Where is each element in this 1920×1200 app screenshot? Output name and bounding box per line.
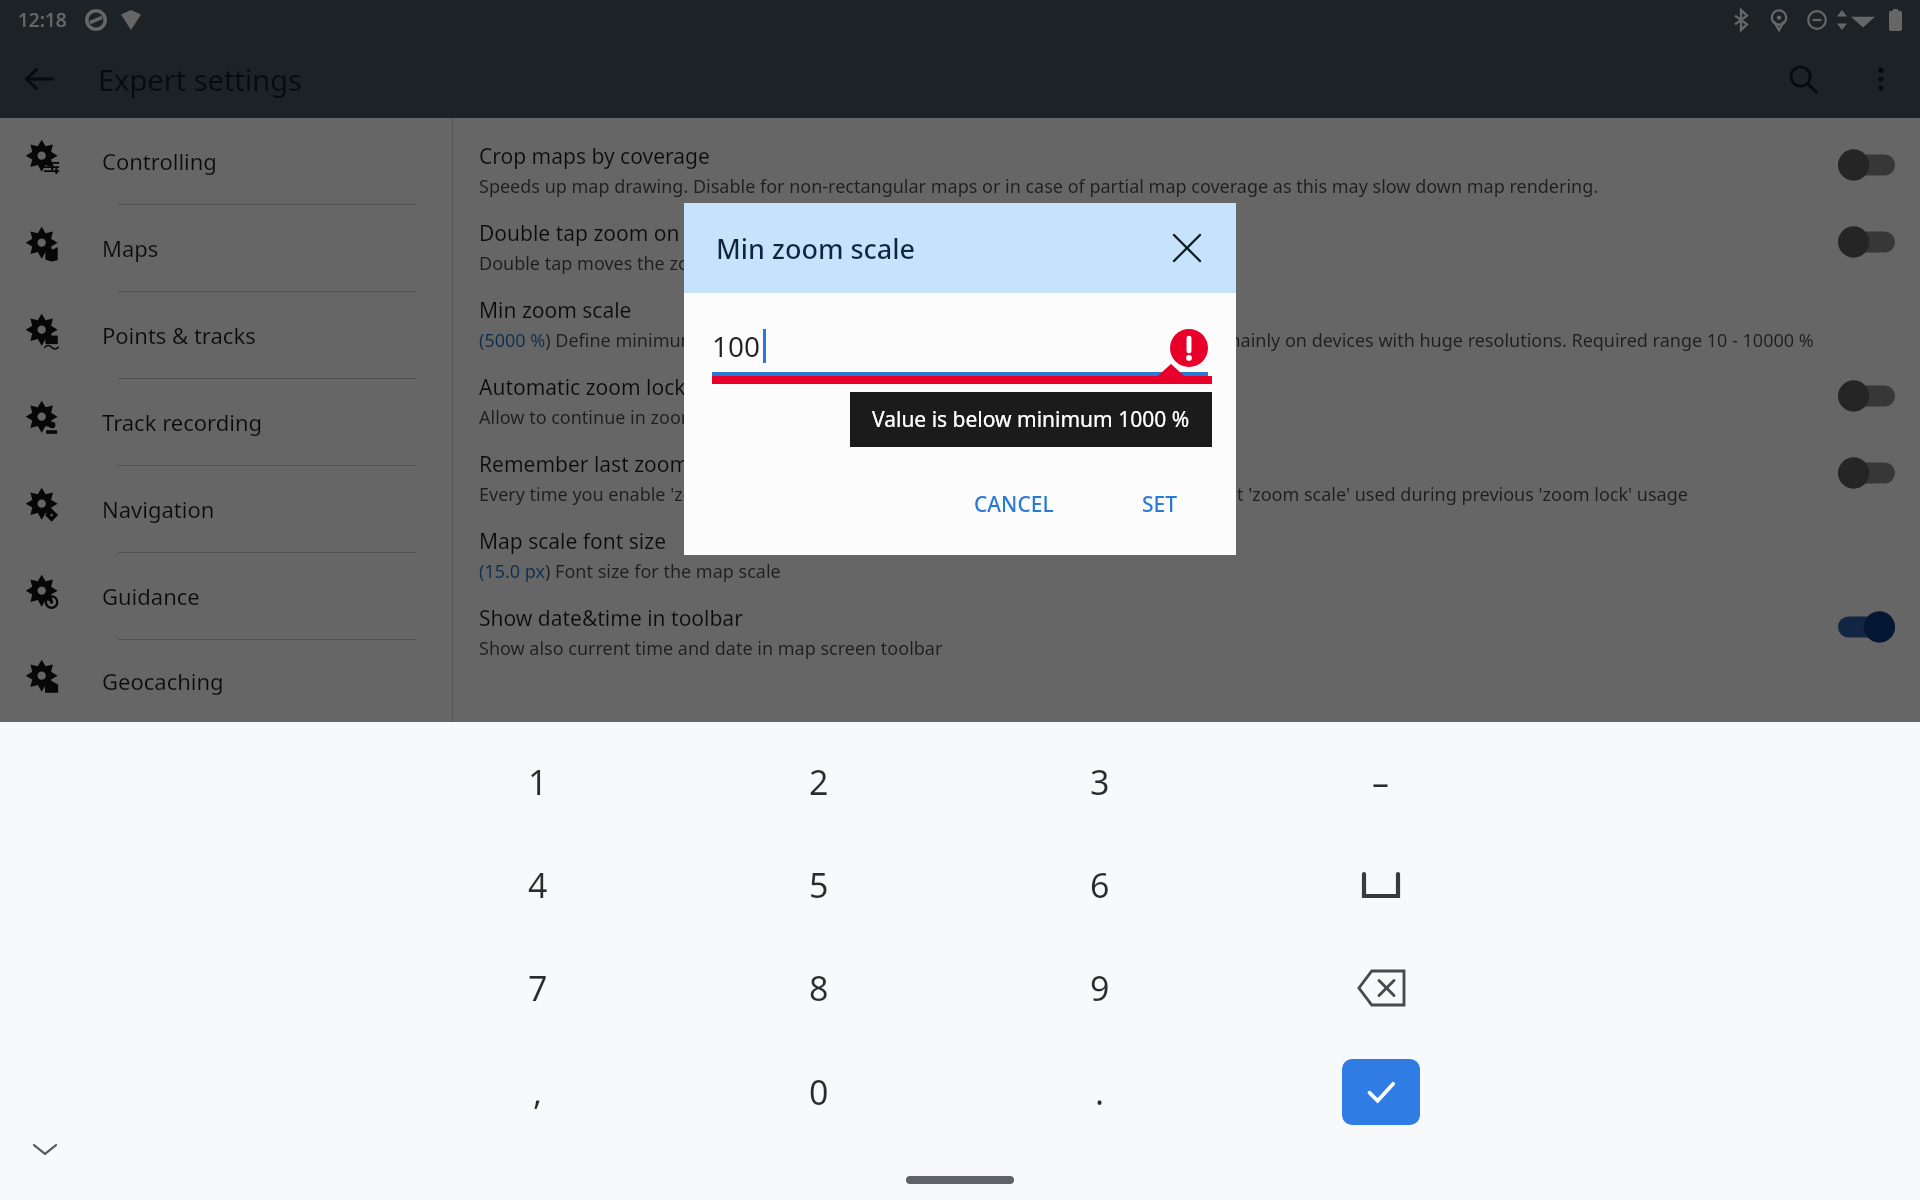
button[interactable] bbox=[1240, 833, 1521, 936]
button[interactable]: Controlling bbox=[0, 118, 452, 205]
button[interactable]: Toggle bbox=[1838, 148, 1900, 182]
button[interactable]: Enter bbox=[1240, 1040, 1521, 1144]
staticText: Crop maps by coverage bbox=[479, 142, 710, 171]
staticText: 6 bbox=[1090, 862, 1110, 908]
button[interactable]: – bbox=[1240, 730, 1521, 833]
button[interactable]: Hide keyboard bbox=[28, 1132, 62, 1166]
staticText: Allow to continue in zoom lock mode afte… bbox=[479, 405, 1022, 430]
staticText: 9 bbox=[1090, 965, 1110, 1011]
button[interactable]: Automatic zoom lock bbox=[453, 363, 1920, 440]
staticText: Track recording bbox=[102, 407, 263, 437]
other: Backspace bbox=[1358, 971, 1404, 1005]
staticText: Min zoom scale bbox=[716, 230, 916, 267]
button[interactable]: Toggle bbox=[1838, 610, 1900, 644]
button[interactable]: Close bbox=[1160, 221, 1214, 275]
button[interactable]: Min zoom scale bbox=[453, 286, 1920, 363]
button[interactable]: Map scale font size bbox=[453, 517, 1920, 594]
staticText: (15.0 px) Font size for the map scale bbox=[479, 559, 781, 584]
button[interactable]: CANCEL bbox=[956, 478, 1072, 531]
staticText: 1 bbox=[528, 759, 548, 805]
staticText: Expert settings bbox=[98, 60, 302, 99]
button[interactable]: 9 bbox=[959, 936, 1240, 1040]
button[interactable]: 4 bbox=[398, 833, 678, 936]
button[interactable]: 7 bbox=[398, 936, 678, 1040]
staticText: 12:18 bbox=[18, 7, 67, 33]
staticText: 8 bbox=[809, 965, 829, 1011]
button[interactable]: Points & tracks bbox=[0, 292, 452, 379]
button[interactable]: Geocaching bbox=[0, 640, 452, 722]
staticText: Speeds up map drawing. Disable for non-r… bbox=[479, 174, 1599, 199]
staticText: 100 bbox=[712, 327, 761, 365]
button[interactable]: 2 bbox=[678, 730, 959, 833]
staticText: 2 bbox=[809, 759, 829, 805]
staticText: 4 bbox=[528, 862, 548, 908]
button[interactable]: 1 bbox=[398, 730, 678, 833]
button[interactable]: Back bbox=[0, 40, 78, 118]
staticText: 0 bbox=[809, 1069, 829, 1115]
staticText: Navigation bbox=[102, 494, 215, 524]
button[interactable]: Backspace bbox=[1240, 936, 1521, 1040]
staticText: Maps bbox=[102, 233, 159, 263]
button[interactable]: Maps bbox=[0, 205, 452, 292]
staticText: Points & tracks bbox=[102, 320, 256, 350]
button[interactable]: Enter bbox=[1342, 1059, 1420, 1125]
staticText: SET bbox=[1142, 490, 1178, 519]
button[interactable]: Crop maps by coverage bbox=[453, 132, 1920, 209]
button[interactable]: Guidance bbox=[0, 553, 452, 640]
button[interactable]: Track recording bbox=[0, 379, 452, 466]
staticText: Double tap moves the zoom level one step… bbox=[479, 251, 1052, 276]
staticText: Every time you enable 'zoom lock', Locus… bbox=[479, 482, 1688, 507]
staticText: Guidance bbox=[102, 581, 200, 611]
staticText: (5000 %) Define minimum allowed zoom sca… bbox=[479, 328, 1814, 353]
button[interactable]: Remember last zoom lock value bbox=[453, 440, 1920, 517]
staticText: , bbox=[533, 1069, 543, 1115]
button[interactable]: 6 bbox=[959, 833, 1240, 936]
staticText: 5 bbox=[809, 862, 829, 908]
button[interactable]: SET bbox=[1124, 478, 1196, 531]
staticText: . bbox=[1095, 1069, 1105, 1115]
button[interactable]: 3 bbox=[959, 730, 1240, 833]
button[interactable]: Double tap zoom on map bbox=[453, 209, 1920, 286]
button[interactable]: Toggle bbox=[1838, 225, 1900, 259]
button[interactable]: Search bbox=[1764, 40, 1842, 118]
staticText: Automatic zoom lock bbox=[479, 373, 686, 402]
button[interactable]: Navigation bbox=[0, 466, 452, 553]
button[interactable]: 5 bbox=[678, 833, 959, 936]
button[interactable]: Toggle bbox=[1838, 379, 1900, 413]
button[interactable]: 0 bbox=[678, 1040, 959, 1144]
staticText: Map scale font size bbox=[479, 527, 666, 556]
staticText: 3 bbox=[1090, 759, 1110, 805]
staticText: Show also current time and date in map s… bbox=[479, 636, 943, 661]
button[interactable]: Show date&time in toolbar bbox=[453, 594, 1920, 671]
staticText: 7 bbox=[528, 965, 548, 1011]
staticText: Value is below minimum 1000 % bbox=[872, 405, 1190, 434]
staticText: Controlling bbox=[102, 146, 217, 176]
staticText: Min zoom scale bbox=[479, 296, 632, 325]
staticText: Geocaching bbox=[102, 666, 224, 696]
staticText: Show date&time in toolbar bbox=[479, 604, 743, 633]
staticText: – bbox=[1372, 759, 1389, 805]
button[interactable]: . bbox=[959, 1040, 1240, 1144]
button[interactable]: , bbox=[398, 1040, 678, 1144]
staticText: Double tap zoom on map bbox=[479, 219, 730, 248]
staticText: Remember last zoom lock value bbox=[479, 450, 793, 479]
staticText: CANCEL bbox=[974, 490, 1054, 519]
button[interactable]: 8 bbox=[678, 936, 959, 1040]
button[interactable]: Toggle bbox=[1838, 456, 1900, 490]
